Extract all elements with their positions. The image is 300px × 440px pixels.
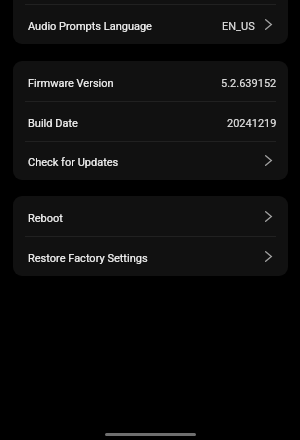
staticText: EN_US xyxy=(222,20,255,33)
other: Reboot xyxy=(262,196,274,236)
other: Restore Factory Settings xyxy=(262,236,274,276)
other: Check for Updates xyxy=(262,141,274,180)
button[interactable]: Restore Factory Settings xyxy=(13,236,288,276)
button[interactable]: Check for Updates xyxy=(13,141,288,180)
button[interactable]: Reboot xyxy=(13,196,288,236)
button[interactable]: Build Date xyxy=(13,101,288,141)
button[interactable]: Audio Prompts Language xyxy=(13,4,288,44)
staticText: Reboot xyxy=(28,212,63,225)
staticText: 20241219 xyxy=(227,117,277,130)
staticText: Check for Updates xyxy=(28,156,119,169)
staticText: Audio Prompts Language xyxy=(28,20,152,33)
staticText: 5.2.639152 xyxy=(221,77,277,90)
other: Audio Prompts Language xyxy=(262,4,274,44)
staticText: Build Date xyxy=(28,117,78,130)
staticText: Firmware Version xyxy=(28,77,114,90)
button[interactable]: Firmware Version xyxy=(13,61,288,101)
staticText: Restore Factory Settings xyxy=(28,252,148,265)
